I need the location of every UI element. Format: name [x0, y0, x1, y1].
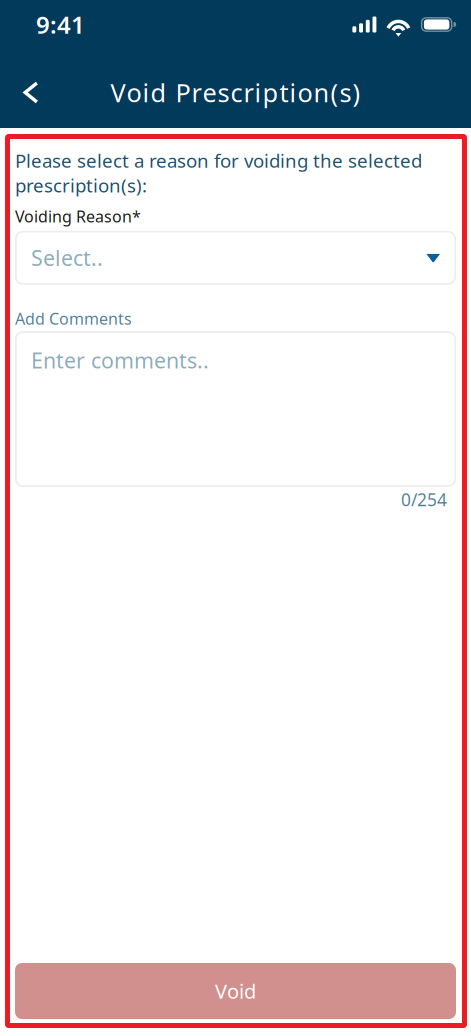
staticText: Void Prescription(s) [110, 76, 360, 109]
staticText: Void [215, 978, 256, 1004]
staticText: Voiding Reason* [15, 206, 141, 227]
button[interactable]: Back [0, 66, 60, 118]
button[interactable]: Enter comments.. [15, 331, 456, 487]
staticText: 9:41 [36, 9, 85, 40]
staticText: Please select a reason for voiding the s… [15, 148, 422, 198]
staticText: 0/254 [401, 488, 447, 511]
staticText: Select.. [31, 244, 103, 272]
staticText: Add Comments [15, 308, 132, 329]
button[interactable]: Void [15, 963, 456, 1019]
button[interactable]: Select.. [15, 231, 456, 285]
staticText: Enter comments.. [31, 346, 209, 374]
